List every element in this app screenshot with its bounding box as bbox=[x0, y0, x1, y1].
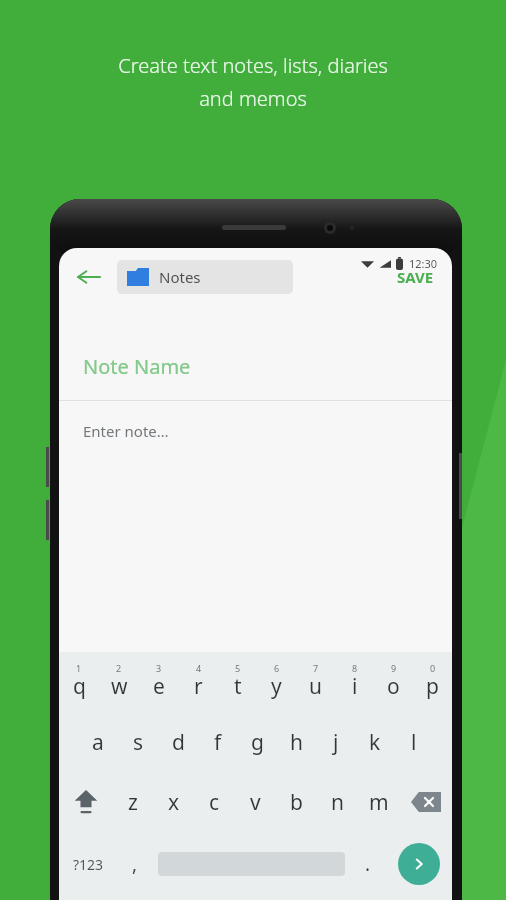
staticText: v bbox=[250, 788, 261, 817]
staticText: z bbox=[128, 788, 138, 817]
staticText: and memos bbox=[199, 85, 307, 112]
staticText: w bbox=[111, 672, 128, 701]
staticText: d bbox=[172, 728, 185, 757]
staticText: Note Name bbox=[83, 353, 191, 380]
staticText: n bbox=[331, 788, 344, 817]
button[interactable]: m bbox=[358, 774, 399, 830]
staticText: h bbox=[290, 728, 303, 757]
button[interactable]: Enter bbox=[386, 836, 452, 892]
button[interactable]: k bbox=[355, 714, 394, 770]
staticText: b bbox=[290, 788, 303, 817]
button[interactable]: Notes bbox=[117, 260, 293, 294]
staticText: t bbox=[234, 672, 242, 701]
staticText: 1 bbox=[76, 662, 82, 674]
button[interactable]: Space bbox=[153, 836, 350, 892]
staticText: s bbox=[133, 728, 144, 757]
staticText: , bbox=[132, 851, 138, 877]
button[interactable]: Backspace bbox=[399, 774, 452, 830]
button[interactable]: 1 bbox=[59, 654, 99, 710]
staticText: 3 bbox=[156, 662, 162, 674]
button[interactable]: j bbox=[316, 714, 355, 770]
staticText: a bbox=[92, 728, 104, 757]
staticText: g bbox=[251, 728, 264, 757]
button[interactable]: Note Name bbox=[59, 336, 452, 396]
button[interactable]: 9 bbox=[374, 654, 413, 710]
staticText: m bbox=[369, 788, 389, 817]
button[interactable]: g bbox=[238, 714, 277, 770]
staticText: r bbox=[194, 672, 203, 701]
button[interactable]: 8 bbox=[335, 654, 374, 710]
button[interactable]: s bbox=[118, 714, 158, 770]
staticText: 7 bbox=[313, 662, 319, 674]
staticText: 0 bbox=[430, 662, 436, 674]
button[interactable]: 2 bbox=[99, 654, 139, 710]
staticText: Enter note… bbox=[83, 421, 169, 441]
staticText: y bbox=[271, 672, 282, 701]
staticText: Notes bbox=[159, 267, 201, 287]
button[interactable]: 6 bbox=[257, 654, 296, 710]
button[interactable]: b bbox=[276, 774, 317, 830]
button[interactable]: , bbox=[117, 836, 153, 892]
staticText: 4 bbox=[196, 662, 202, 674]
staticText: 2 bbox=[116, 662, 122, 674]
button[interactable]: 5 bbox=[218, 654, 257, 710]
staticText: k bbox=[369, 728, 381, 757]
staticText: l bbox=[411, 728, 417, 757]
button[interactable]: 3 bbox=[139, 654, 179, 710]
staticText: o bbox=[387, 672, 400, 701]
button[interactable]: Shift bbox=[59, 774, 112, 830]
button[interactable]: Back bbox=[69, 257, 109, 297]
button[interactable]: f bbox=[198, 714, 238, 770]
staticText: SAVE bbox=[397, 267, 434, 287]
button[interactable]: v bbox=[235, 774, 276, 830]
button[interactable]: 7 bbox=[296, 654, 335, 710]
staticText: 6 bbox=[274, 662, 280, 674]
button[interactable]: 0 bbox=[413, 654, 452, 710]
staticText: j bbox=[333, 728, 339, 757]
button[interactable]: z bbox=[112, 774, 153, 830]
staticText: p bbox=[426, 672, 439, 701]
staticText: c bbox=[209, 788, 220, 817]
button[interactable]: ?123 bbox=[59, 836, 117, 892]
button[interactable]: . bbox=[350, 836, 386, 892]
button[interactable]: l bbox=[394, 714, 433, 770]
staticText: 8 bbox=[352, 662, 358, 674]
button[interactable]: Enter note… bbox=[59, 401, 452, 651]
button[interactable]: d bbox=[158, 714, 198, 770]
button[interactable]: a bbox=[78, 714, 118, 770]
staticText: . bbox=[365, 851, 371, 877]
staticText: q bbox=[73, 672, 86, 701]
button[interactable]: c bbox=[194, 774, 235, 830]
staticText: i bbox=[352, 672, 358, 701]
button[interactable]: n bbox=[317, 774, 358, 830]
staticText: 5 bbox=[235, 662, 241, 674]
staticText: x bbox=[168, 788, 180, 817]
staticText: Create text notes, lists, diaries bbox=[118, 52, 388, 79]
button[interactable]: h bbox=[277, 714, 316, 770]
staticText: u bbox=[309, 672, 322, 701]
button[interactable]: SAVE bbox=[387, 261, 444, 293]
staticText: f bbox=[214, 728, 222, 757]
button[interactable]: x bbox=[153, 774, 194, 830]
button[interactable]: 4 bbox=[179, 654, 218, 710]
staticText: ?123 bbox=[73, 855, 104, 874]
staticText: 9 bbox=[391, 662, 397, 674]
staticText: 12:30 bbox=[409, 256, 438, 271]
staticText: e bbox=[153, 672, 165, 701]
